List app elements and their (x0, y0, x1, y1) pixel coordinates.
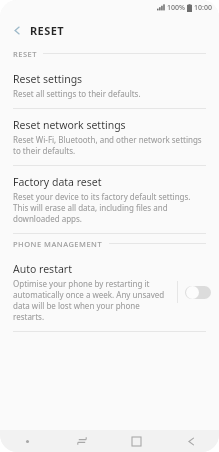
staticText: Optimise your phone by restarting it aut… (13, 278, 171, 322)
staticText: RESET (30, 23, 64, 38)
button[interactable]: Reset settings (0, 63, 219, 108)
staticText: PHONE MANAGEMENT (13, 239, 103, 249)
staticText: Reset settings (13, 72, 83, 86)
staticText: RESET (13, 49, 37, 59)
staticText: Reset Wi-Fi, Bluetooth, and other networ… (13, 134, 206, 156)
staticText: Factory data reset (13, 175, 102, 189)
button[interactable]: Factory data reset (0, 166, 219, 233)
staticText: 10:00 (194, 3, 212, 13)
staticText: 100% (167, 3, 185, 13)
staticText: Auto restart (13, 262, 72, 276)
button[interactable]: Auto restart (0, 253, 219, 331)
button[interactable]: Back (8, 21, 26, 39)
staticText: Reset all settings to their defaults. (13, 88, 141, 99)
button[interactable]: Reset network settings (0, 109, 219, 165)
button[interactable]: Keyboard indicator (0, 430, 54, 452)
staticText: Reset network settings (13, 118, 126, 132)
button[interactable]: Auto restart toggle (185, 284, 211, 300)
staticText: Reset your device to its factory default… (13, 191, 206, 224)
button[interactable]: Home (109, 430, 164, 452)
button[interactable]: Recents (54, 430, 109, 452)
button[interactable]: Back (164, 430, 219, 452)
